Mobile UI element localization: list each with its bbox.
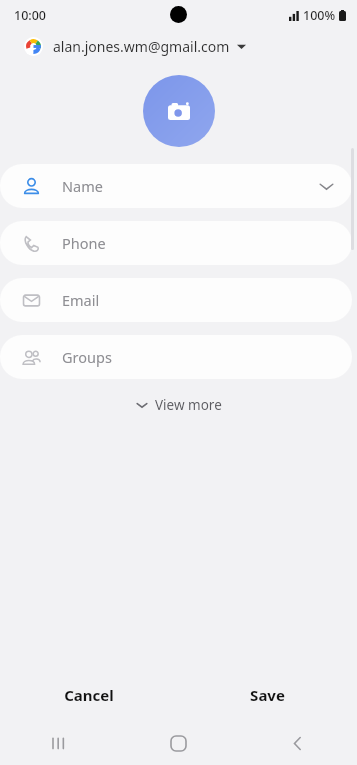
staticText: Phone: [62, 233, 106, 253]
staticText: 100%: [303, 7, 336, 24]
button[interactable]: Phone: [0, 221, 352, 265]
staticText: Save: [250, 685, 285, 705]
button[interactable]: View more: [124, 390, 234, 420]
button[interactable]: Groups: [0, 335, 352, 379]
button[interactable]: Recent apps: [0, 721, 119, 765]
staticText: Groups: [62, 347, 112, 367]
button[interactable]: Name: [0, 164, 352, 208]
staticText: Cancel: [64, 685, 114, 705]
staticText: Email: [62, 290, 100, 310]
button[interactable]: Home: [119, 721, 238, 765]
staticText: View more: [155, 396, 222, 414]
staticText: alan.jones.wm@gmail.com: [53, 37, 230, 56]
button[interactable]: alan.jones.wm@gmail.com: [0, 30, 357, 63]
button[interactable]: Email: [0, 278, 352, 322]
staticText: 10:00: [14, 7, 47, 24]
button[interactable]: Back: [238, 721, 357, 765]
button[interactable]: Cancel: [0, 669, 178, 721]
button[interactable]: Save: [178, 669, 357, 721]
staticText: Name: [62, 176, 103, 196]
button[interactable]: Add contact photo: [143, 75, 215, 147]
